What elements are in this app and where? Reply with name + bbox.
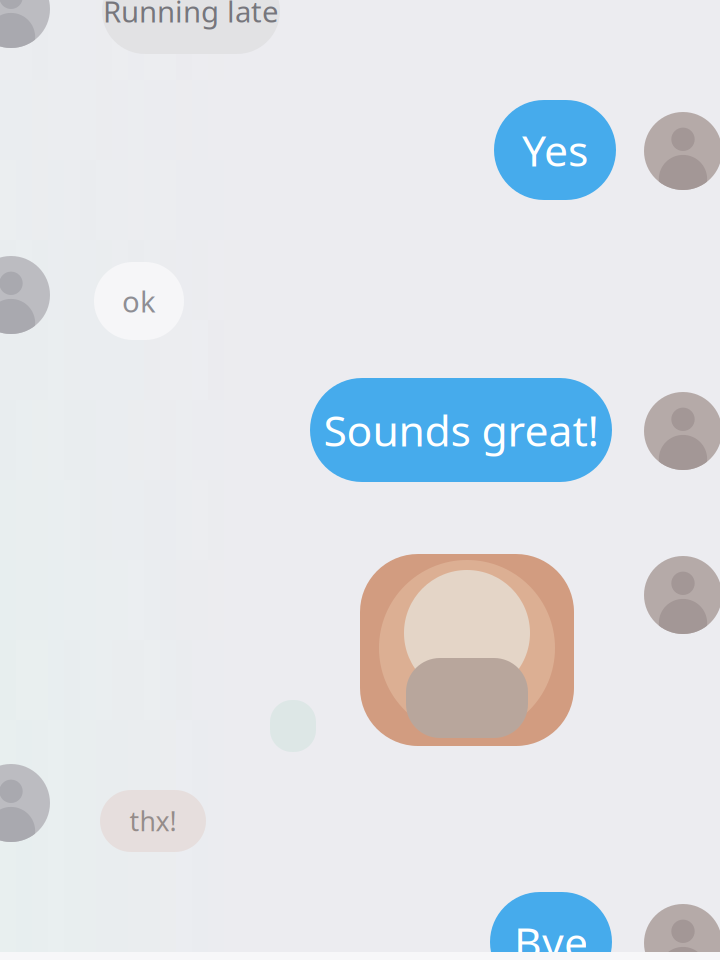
staticText: thx! bbox=[129, 803, 176, 839]
button[interactable]: Yes bbox=[494, 100, 616, 200]
button[interactable]: Sounds great! bbox=[310, 378, 612, 482]
staticText: Sounds great! bbox=[323, 402, 598, 458]
staticText: Running late bbox=[103, 0, 279, 30]
staticText: Bye bbox=[514, 914, 588, 960]
button[interactable]: ok bbox=[94, 262, 184, 340]
staticText: Yes bbox=[522, 122, 588, 178]
button[interactable]: Bye bbox=[490, 892, 612, 960]
button[interactable]: Tapback bbox=[270, 700, 316, 752]
staticText: ok bbox=[122, 281, 156, 320]
button[interactable]: Running late bbox=[102, 0, 280, 54]
button[interactable]: Photo attachment bbox=[360, 554, 574, 746]
button[interactable]: thx! bbox=[100, 790, 206, 852]
